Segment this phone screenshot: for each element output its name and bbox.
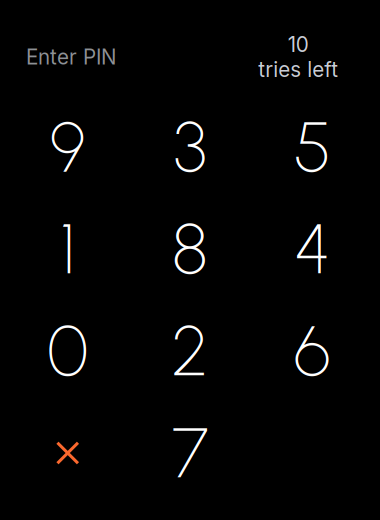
button[interactable]: 2 xyxy=(129,300,251,402)
button[interactable]: 7 xyxy=(129,402,251,504)
staticText: 6 xyxy=(294,309,331,393)
staticText: 2 xyxy=(171,309,208,393)
staticText: 4 xyxy=(294,207,330,291)
staticText: 7 xyxy=(172,411,208,495)
staticText: 5 xyxy=(294,105,331,189)
button[interactable]: Cancel xyxy=(7,402,129,504)
staticText: 3 xyxy=(173,105,206,189)
staticText: 10 tries left xyxy=(258,32,338,82)
staticText: Enter PIN xyxy=(26,44,117,69)
staticText: 8 xyxy=(172,207,208,291)
button[interactable]: 4 xyxy=(251,198,373,300)
staticText: 1 xyxy=(60,207,75,291)
button[interactable]: 5 xyxy=(251,96,373,198)
button[interactable]: 3 xyxy=(129,96,251,198)
button[interactable]: 8 xyxy=(129,198,251,300)
button[interactable]: 6 xyxy=(251,300,373,402)
button[interactable]: 0 xyxy=(7,300,129,402)
button[interactable]: 9 xyxy=(7,96,129,198)
button[interactable]: 1 xyxy=(7,198,129,300)
staticText: 9 xyxy=(50,105,86,189)
staticText: 0 xyxy=(47,309,88,393)
